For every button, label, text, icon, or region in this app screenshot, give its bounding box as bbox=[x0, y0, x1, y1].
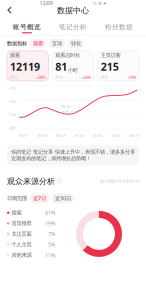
staticText: 近30日 bbox=[55, 195, 71, 202]
button[interactable]: 近30日 bbox=[52, 193, 74, 203]
button[interactable]: 观看 bbox=[7, 51, 48, 81]
staticText: 环比 bbox=[10, 75, 18, 80]
staticText: ·lll ◍ ▰ bbox=[92, 0, 106, 6]
staticText: 互动 bbox=[52, 40, 62, 47]
staticText: 观看总时长 bbox=[55, 52, 80, 58]
staticText: 账号概览 bbox=[13, 23, 41, 31]
staticText: 小时 bbox=[68, 67, 78, 74]
staticText: 日期范围 bbox=[7, 195, 27, 201]
staticText: 09-16 bbox=[61, 104, 70, 109]
staticText: 环比 bbox=[55, 75, 63, 80]
button[interactable]: 笔记分析 bbox=[50, 21, 96, 35]
button[interactable]: 互动 bbox=[49, 39, 65, 48]
button[interactable]: 转化 bbox=[68, 39, 84, 48]
staticText: 观看 bbox=[33, 40, 43, 47]
staticText: 09-14 bbox=[74, 133, 83, 138]
staticText: 数据指标 bbox=[7, 40, 27, 47]
staticText: 09-15 bbox=[93, 133, 102, 138]
button[interactable]: 近7日 bbox=[30, 193, 49, 203]
staticText: 环比 bbox=[101, 75, 109, 80]
button[interactable]: 粉丝数据 bbox=[96, 21, 142, 35]
staticText: 关注页面 bbox=[11, 231, 31, 237]
staticText: 粉丝数据 bbox=[105, 23, 133, 31]
staticText: 09-17 bbox=[130, 133, 139, 138]
staticText: 你的笔记 笔记分享 快速上升中，表现不错，请多多分享近期发布的笔记，保持增长趋势… bbox=[11, 149, 135, 162]
staticText: 800 bbox=[9, 125, 15, 130]
staticText: +38% bbox=[36, 75, 45, 80]
staticText: 09-11 bbox=[19, 133, 28, 138]
staticText: 5% bbox=[48, 241, 55, 248]
button[interactable]: 观看总时长 bbox=[52, 51, 94, 81]
staticText: 浏览 2.1k bbox=[61, 110, 77, 115]
button[interactable]: 主页访客 bbox=[98, 51, 139, 81]
staticText: 近7日 bbox=[33, 195, 46, 202]
staticText: 11% bbox=[45, 251, 55, 259]
staticText: 首页推荐 bbox=[11, 220, 31, 227]
staticText: 1.6k bbox=[8, 99, 15, 104]
staticText: 1.2k bbox=[8, 112, 15, 117]
staticText: 2.4k bbox=[8, 85, 15, 91]
staticText: 12:09 bbox=[40, 0, 53, 7]
staticText: 统计周期 09-10至09-17 bbox=[100, 179, 139, 184]
staticText: 数据中心 bbox=[57, 6, 89, 15]
staticText: 09-13 bbox=[56, 133, 65, 138]
staticText: 81 bbox=[55, 59, 67, 74]
staticText: 个人主页 bbox=[11, 241, 31, 248]
staticText: 61% bbox=[45, 209, 55, 216]
staticText: 观看 bbox=[10, 52, 20, 58]
staticText: 笔记分析 bbox=[59, 23, 87, 31]
button[interactable]: 观看 bbox=[30, 39, 46, 48]
staticText: 7% bbox=[48, 230, 55, 237]
staticText: ⓘ bbox=[56, 178, 61, 184]
staticText: 其他来源 bbox=[11, 252, 31, 258]
staticText: 215 bbox=[101, 59, 119, 74]
staticText: +56% bbox=[82, 75, 91, 80]
button[interactable]: Back bbox=[5, 4, 15, 16]
staticText: 09-16 bbox=[111, 133, 120, 138]
staticText: 12119 bbox=[10, 59, 40, 74]
staticText: +19% bbox=[127, 75, 136, 80]
staticText: 搜索 bbox=[11, 209, 21, 216]
button[interactable]: 账号概览 bbox=[4, 21, 50, 35]
staticText: 09-12 bbox=[37, 133, 46, 138]
staticText: 主页访客 bbox=[101, 52, 121, 58]
staticText: 观众来源分析 bbox=[7, 176, 55, 186]
staticText: 转化 bbox=[71, 40, 81, 47]
staticText: 19% bbox=[45, 220, 55, 227]
